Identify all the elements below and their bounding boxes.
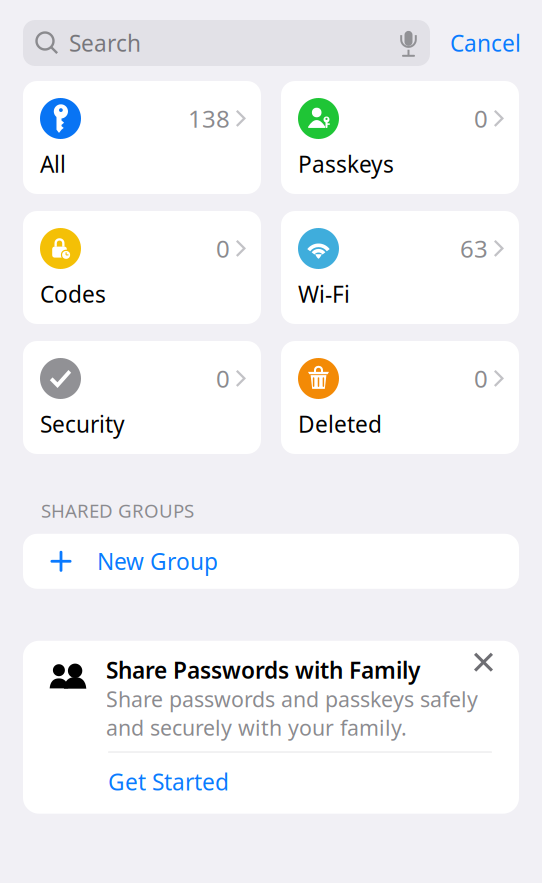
staticText: All xyxy=(40,149,66,179)
button[interactable]: New Group xyxy=(23,534,519,589)
button[interactable]: 138 xyxy=(23,81,261,194)
staticText: Share passwords and passkeys safely xyxy=(106,685,478,713)
staticText: Deleted xyxy=(298,409,382,439)
staticText: SHARED GROUPS xyxy=(41,498,194,523)
staticText: Wi-Fi xyxy=(298,279,350,309)
staticText: 0 xyxy=(216,233,230,264)
staticText: 0 xyxy=(216,363,230,394)
staticText: Get Started xyxy=(108,767,229,797)
staticText: Cancel xyxy=(450,28,521,58)
button[interactable]: Cancel xyxy=(450,28,521,58)
staticText: and securely with your family. xyxy=(106,713,407,741)
button[interactable]: 0 xyxy=(23,341,261,454)
staticText: Share Passwords with Family xyxy=(106,655,420,685)
button[interactable]: Dismiss xyxy=(468,647,499,678)
button[interactable]: 63 xyxy=(281,211,519,324)
staticText: Security xyxy=(40,409,125,439)
staticText: Passkeys xyxy=(298,149,394,179)
button[interactable]: 0 xyxy=(281,341,519,454)
staticText: 63 xyxy=(460,233,488,264)
staticText: 0 xyxy=(474,363,488,394)
staticText: Codes xyxy=(40,279,106,309)
button[interactable]: 0 xyxy=(281,81,519,194)
staticText: 138 xyxy=(188,103,230,134)
staticText: Search xyxy=(69,28,141,58)
button[interactable]: 0 xyxy=(23,211,261,324)
button[interactable]: Get Started xyxy=(23,753,519,814)
staticText: 0 xyxy=(474,103,488,134)
staticText: New Group xyxy=(97,546,218,576)
